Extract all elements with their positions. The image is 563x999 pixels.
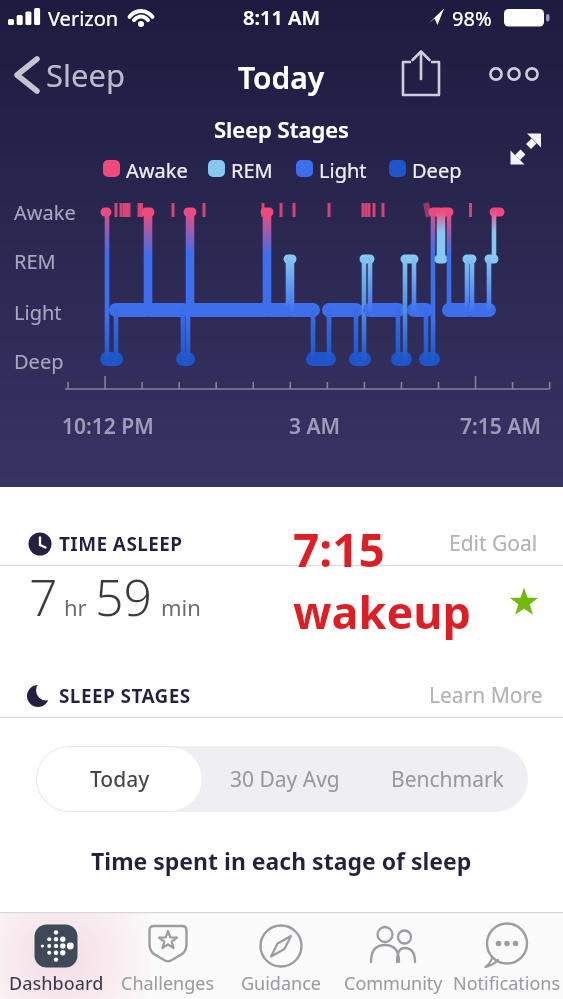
staticText: Dashboard bbox=[9, 971, 104, 996]
staticText: Sleep bbox=[46, 54, 126, 96]
staticText: Time spent in each stage of sleep bbox=[91, 845, 472, 876]
button[interactable] bbox=[502, 126, 550, 172]
button[interactable]: Edit Goal bbox=[435, 524, 550, 562]
staticText: 7:15 bbox=[293, 518, 385, 581]
staticText: Deep bbox=[14, 348, 64, 375]
staticText: SLEEP STAGES bbox=[59, 683, 191, 709]
staticText: wakeup bbox=[293, 581, 471, 642]
staticText: Awake bbox=[14, 199, 76, 226]
staticText: Verizon bbox=[48, 5, 119, 32]
staticText: Edit Goal bbox=[449, 529, 538, 558]
staticText: 10:12 PM bbox=[62, 412, 154, 441]
button[interactable]: Challenges bbox=[112, 912, 224, 999]
staticText: Challenges bbox=[121, 971, 215, 996]
staticText: Light bbox=[319, 157, 367, 184]
staticText: 3 AM bbox=[289, 412, 341, 441]
staticText: Light bbox=[14, 299, 62, 326]
staticText: min bbox=[161, 592, 201, 622]
staticText: Awake bbox=[126, 157, 188, 184]
button[interactable]: Benchmark bbox=[366, 746, 528, 812]
staticText: Sleep Stages bbox=[214, 114, 349, 144]
staticText: 30 Day Avg bbox=[230, 765, 340, 794]
button[interactable] bbox=[482, 52, 544, 96]
staticText: Benchmark bbox=[391, 765, 504, 794]
button[interactable]: Community bbox=[337, 912, 450, 999]
button[interactable]: Dashboard bbox=[0, 912, 112, 999]
staticText: REM bbox=[14, 248, 56, 275]
staticText: 8:11 AM bbox=[243, 4, 321, 31]
staticText: hr bbox=[64, 592, 87, 622]
staticText: Today bbox=[238, 57, 325, 98]
staticText: Today bbox=[90, 765, 150, 794]
button[interactable]: Learn More bbox=[415, 676, 550, 714]
staticText: Community bbox=[344, 971, 443, 996]
staticText: 7 bbox=[29, 563, 58, 631]
button[interactable]: 30 Day Avg bbox=[203, 746, 366, 812]
staticText: TIME ASLEEP bbox=[59, 531, 183, 557]
staticText: Guidance bbox=[241, 971, 321, 996]
staticText: 59 bbox=[95, 563, 153, 631]
staticText: Deep bbox=[412, 157, 462, 184]
staticText: Learn More bbox=[429, 681, 543, 710]
staticText: 98% bbox=[452, 5, 492, 32]
button[interactable] bbox=[393, 45, 449, 103]
staticText: 7:15 AM bbox=[460, 412, 541, 441]
button[interactable]: Sleep bbox=[8, 48, 138, 100]
staticText: Notifications bbox=[453, 971, 561, 996]
button[interactable]: Guidance bbox=[224, 912, 337, 999]
staticText: REM bbox=[231, 157, 273, 184]
button[interactable]: Notifications bbox=[450, 912, 563, 999]
button[interactable]: Today bbox=[36, 746, 203, 812]
